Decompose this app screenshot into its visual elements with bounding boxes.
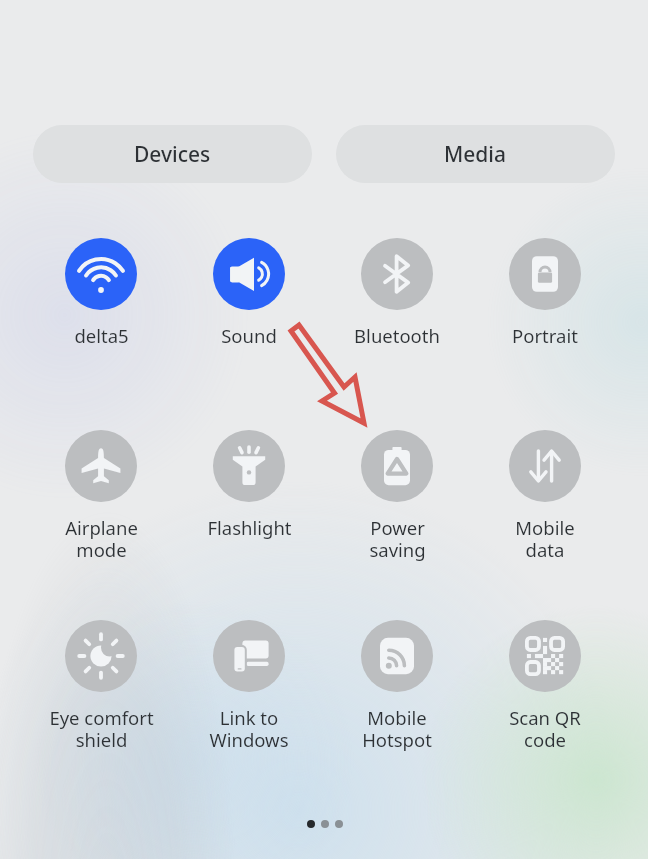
button[interactable]: Portrait, off <box>471 238 619 374</box>
button[interactable]: delta5, on <box>27 238 175 374</box>
button[interactable]: Mobile Hotspot, off <box>323 620 471 756</box>
button[interactable]: Sound, on <box>175 238 323 374</box>
button[interactable]: Eye comfort shield, off <box>27 620 175 756</box>
staticText: delta5 <box>74 323 129 348</box>
button[interactable]: Scan QR code, off <box>471 620 619 756</box>
staticText: Mobile Hotspot <box>362 705 432 753</box>
staticText: Media <box>444 140 507 169</box>
staticText: Power saving <box>369 515 426 563</box>
staticText: Flashlight <box>207 515 292 540</box>
staticText: Eye comfort shield <box>49 705 154 753</box>
staticText: Devices <box>134 140 211 169</box>
button[interactable]: Bluetooth, off <box>323 238 471 374</box>
staticText: Link to Windows <box>209 705 289 753</box>
button[interactable]: Link to Windows, off <box>175 620 323 756</box>
staticText: Bluetooth <box>354 323 440 348</box>
button[interactable]: Airplane mode, off <box>27 430 175 566</box>
staticText: Portrait <box>512 323 578 348</box>
button[interactable]: Power saving, off <box>323 430 471 566</box>
button[interactable]: Devices <box>33 125 312 183</box>
staticText: Scan QR code <box>509 705 581 753</box>
other: Page 1 of 3 <box>307 820 343 828</box>
staticText: Airplane mode <box>65 515 138 563</box>
staticText: Mobile data <box>515 515 575 563</box>
button[interactable]: Mobile data, off <box>471 430 619 566</box>
button[interactable]: Media <box>336 125 615 183</box>
staticText: Sound <box>221 323 277 348</box>
button[interactable]: Flashlight, off <box>175 430 323 566</box>
